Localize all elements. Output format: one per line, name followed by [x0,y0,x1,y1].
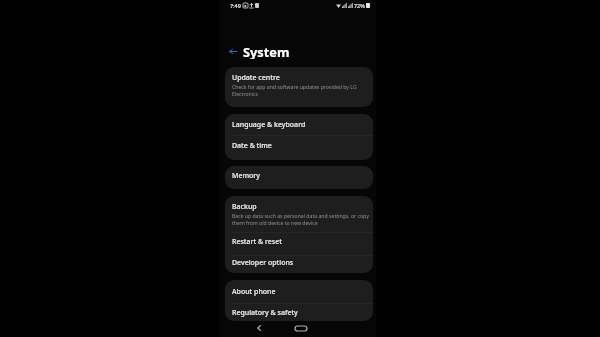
staticText: Update centre [232,73,280,83]
staticText: Back up data such as personal data and s… [232,212,373,227]
staticText: Developer options [232,258,294,268]
staticText: Date & time [232,141,272,151]
staticText: Language & keyboard [232,120,306,130]
button[interactable]: Restart & reset [225,232,373,255]
staticText: Check for app and software updates provi… [232,83,373,98]
staticText: About phone [232,287,276,297]
button[interactable]: Language & keyboard [225,114,373,135]
button[interactable]: Navigate up [227,45,239,57]
staticText: Regulatory & safety [232,308,298,318]
button[interactable]: Back [252,321,266,335]
button[interactable]: About phone [225,280,373,303]
button[interactable]: Date & time [225,135,373,160]
staticText: 7:49 [230,2,241,9]
button[interactable]: Backup [225,196,373,232]
button[interactable]: Developer options [225,255,373,273]
button[interactable]: Update centre [225,67,373,107]
staticText: Restart & reset [232,237,282,247]
button[interactable]: Regulatory & safety [225,303,373,320]
staticText: 72% [354,2,365,9]
staticText: Memory [232,171,261,181]
button[interactable]: Home [294,321,308,335]
staticText: System [243,43,290,59]
button[interactable]: Memory [225,166,373,189]
staticText: Backup [232,202,257,212]
